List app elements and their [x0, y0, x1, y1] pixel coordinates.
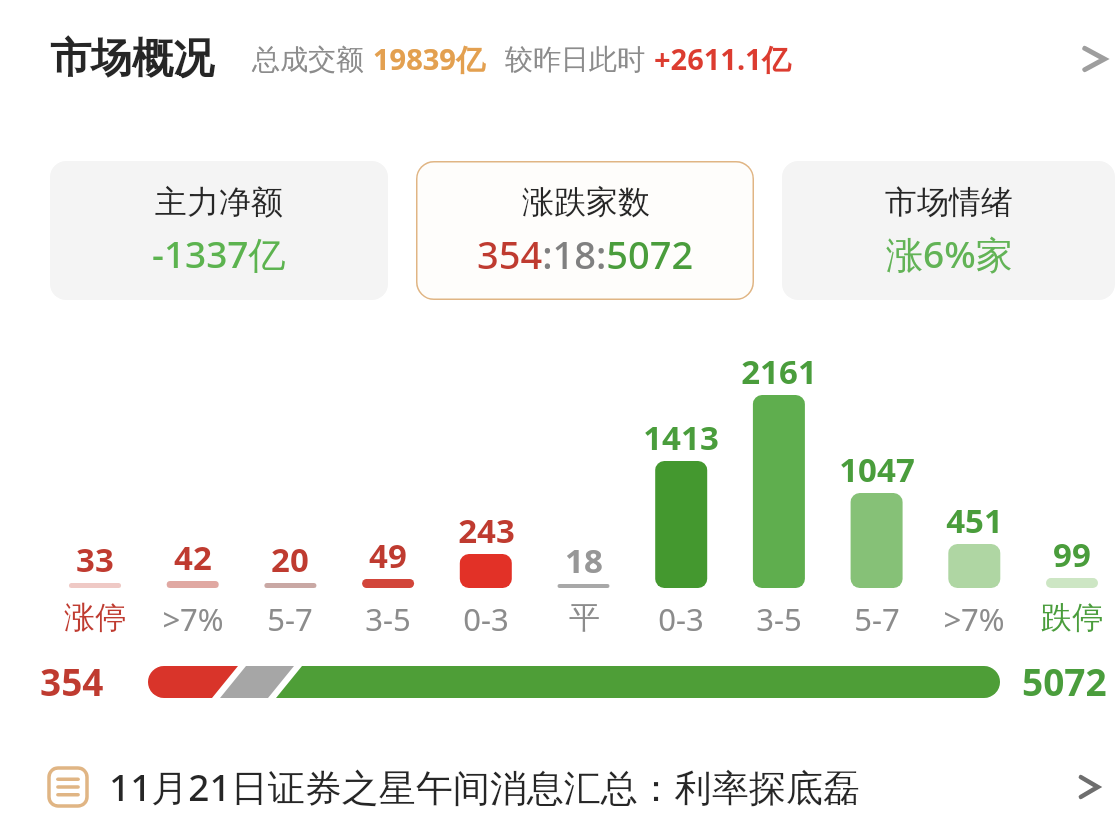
staticText: 354 [40, 656, 104, 706]
button[interactable]: 主力净额 [50, 161, 388, 300]
staticText: 主力净额 [155, 182, 283, 222]
staticText: 2161 [741, 349, 817, 394]
button[interactable]: 市场情绪 [782, 161, 1115, 300]
staticText: 1047 [839, 447, 915, 492]
button[interactable]: 11月21日证券之星午间消息汇总：利率探底磊 [0, 742, 1115, 831]
button[interactable]: 涨跌家数 [416, 161, 754, 300]
staticText: 0-3 [658, 598, 704, 640]
staticText: 涨6%家 [886, 228, 1013, 279]
staticText: 0-3 [463, 598, 509, 640]
staticText: -1337亿 [152, 228, 286, 279]
staticText: 11月21日证券之星午间消息汇总：利率探底磊 [109, 761, 1073, 812]
staticText: 243 [458, 508, 515, 553]
staticText: 涨停 [64, 598, 126, 637]
staticText: 3-5 [756, 598, 802, 640]
staticText: 354:18:5072 [477, 228, 694, 280]
staticText: 49 [369, 533, 407, 578]
staticText: 市场情绪 [885, 182, 1013, 222]
button[interactable]: 查看更多新闻 [1073, 770, 1107, 804]
button[interactable]: 展开市场概况 [1079, 42, 1113, 76]
staticText: 19839亿 [373, 39, 485, 79]
staticText: 涨跌家数 [522, 182, 650, 222]
staticText: 5072 [1022, 656, 1107, 706]
staticText: 451 [946, 498, 1003, 543]
staticText: 3-5 [365, 598, 411, 640]
staticText: 5-7 [267, 598, 313, 640]
button[interactable]: 市场概况 [0, 0, 1115, 118]
button[interactable]: 354 [0, 650, 1115, 712]
staticText: 市场概况 [50, 33, 214, 85]
staticText: 总成交额 [252, 42, 364, 77]
staticText: 较昨日此时 [505, 42, 645, 77]
staticText: >7% [943, 598, 1005, 640]
staticText: 42 [174, 535, 212, 580]
staticText: 20 [271, 537, 309, 582]
staticText: 99 [1053, 532, 1091, 577]
staticText: 33 [76, 537, 114, 582]
staticText: 平 [569, 598, 600, 637]
staticText: +2611.1亿 [654, 39, 791, 79]
staticText: 18 [565, 538, 603, 583]
staticText: >7% [162, 598, 224, 640]
staticText: 跌停 [1041, 598, 1103, 637]
staticText: 5-7 [854, 598, 900, 640]
staticText: 1413 [643, 415, 719, 460]
